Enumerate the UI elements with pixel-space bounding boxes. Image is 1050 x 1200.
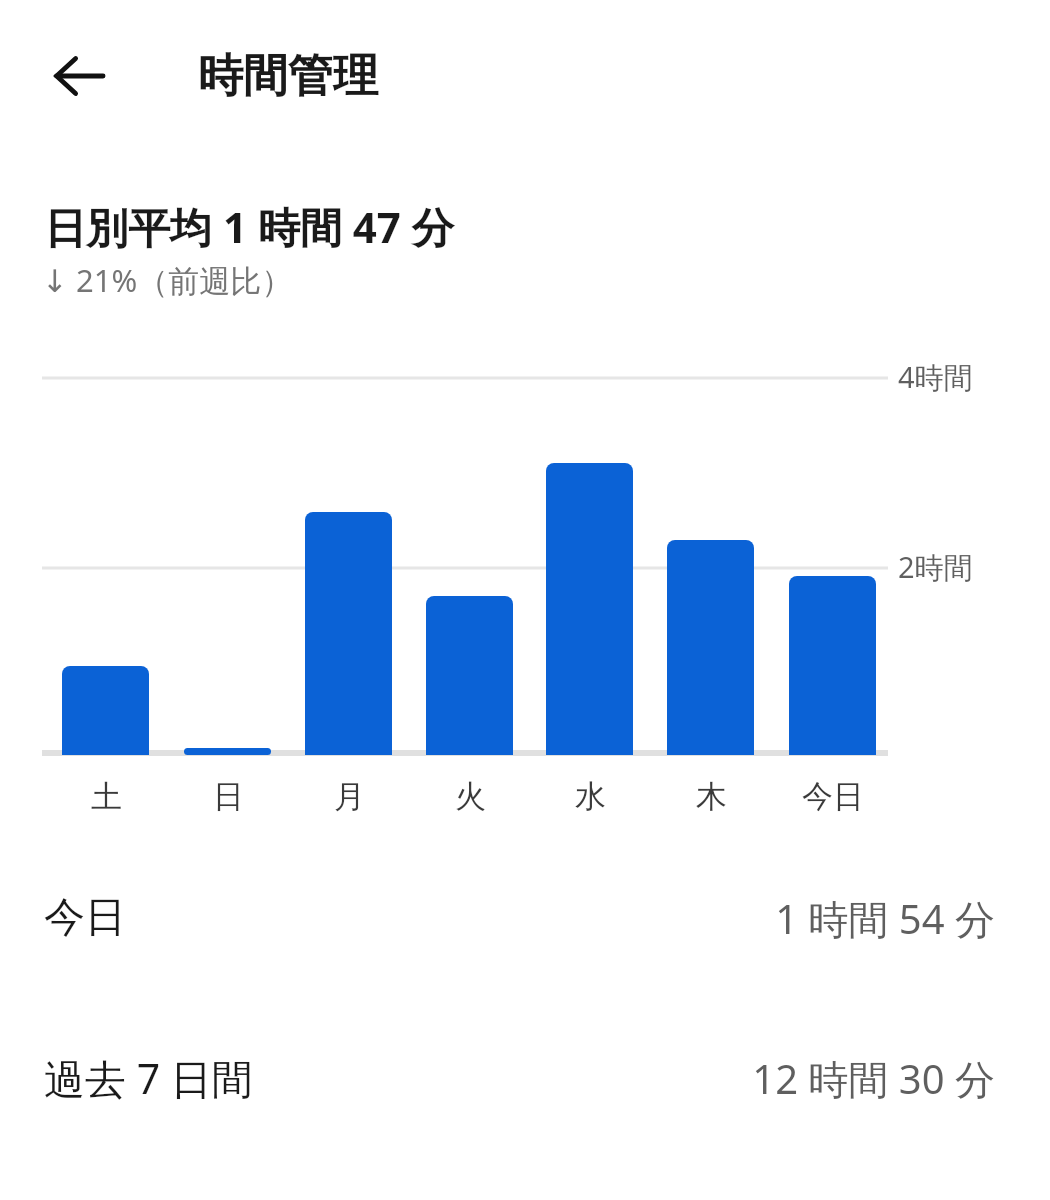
- staticText: 火: [455, 777, 486, 816]
- staticText: 日: [213, 777, 244, 816]
- staticText: 4時間: [898, 357, 973, 397]
- button[interactable]: Back: [42, 46, 116, 106]
- staticText: 月: [334, 777, 365, 816]
- staticText: 12 時間 30 分: [752, 1051, 995, 1106]
- staticText: 時間管理: [198, 48, 378, 105]
- staticText: 木: [696, 777, 727, 816]
- staticText: 1 時間 54 分: [775, 891, 995, 946]
- staticText: 水: [575, 777, 606, 816]
- staticText: 2時間: [898, 547, 973, 587]
- staticText: 今日: [802, 777, 864, 816]
- staticText: ↓ 21%（前週比）: [42, 259, 293, 301]
- staticText: 過去 7 日間: [44, 1050, 253, 1106]
- staticText: 日別平均 1 時間 47 分: [44, 198, 454, 255]
- button[interactable]: 過去 7 日間: [0, 1032, 1050, 1124]
- button[interactable]: 今日: [0, 872, 1050, 964]
- staticText: 今日: [44, 892, 126, 944]
- staticText: 土: [91, 777, 122, 816]
